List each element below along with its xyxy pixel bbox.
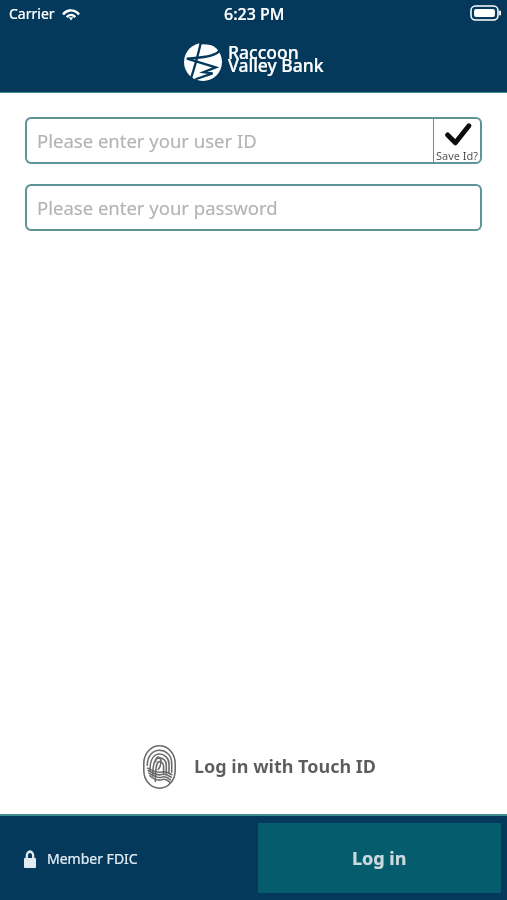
- staticText: Raccoon: [228, 40, 299, 64]
- button[interactable]: Member FDIC: [24, 849, 138, 868]
- staticText: Valley Bank: [228, 53, 324, 77]
- staticText: Member FDIC: [47, 849, 138, 868]
- staticText: Carrier: [9, 4, 55, 23]
- button[interactable]: Log in with Touch ID: [6, 743, 507, 790]
- staticText: Log in: [352, 846, 407, 871]
- button[interactable]: Please enter your password: [25, 184, 482, 231]
- button[interactable]: Please enter your user ID: [25, 117, 433, 164]
- button[interactable]: Log in: [258, 823, 501, 893]
- staticText: Please enter your user ID: [37, 128, 257, 153]
- staticText: Log in with Touch ID: [194, 754, 377, 779]
- staticText: Please enter your password: [37, 195, 278, 220]
- staticText: Save Id?: [436, 148, 479, 163]
- button[interactable]: Save Id: [434, 117, 481, 164]
- staticText: 6:23 PM: [224, 3, 285, 25]
